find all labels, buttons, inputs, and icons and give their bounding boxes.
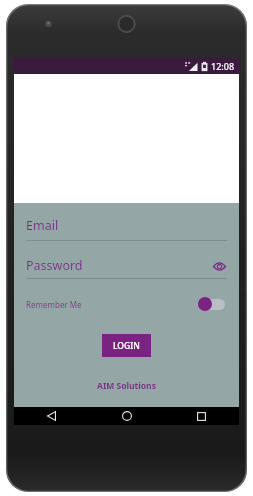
- staticText: Remember Me: [26, 299, 197, 310]
- button[interactable]: Remember Me: [26, 294, 227, 314]
- button[interactable]: AIM Solutions: [97, 380, 156, 392]
- staticText: 12:08: [211, 60, 235, 72]
- staticText: Email: [26, 217, 59, 234]
- staticText: Password: [26, 257, 211, 274]
- staticText: LOGIN: [113, 340, 140, 352]
- button[interactable]: Home: [89, 407, 164, 425]
- button[interactable]: Show password: [211, 258, 227, 274]
- button[interactable]: Recent apps: [164, 407, 239, 425]
- button[interactable]: LOGIN: [102, 334, 151, 357]
- button[interactable]: Password: [26, 257, 227, 279]
- button[interactable]: Email: [26, 217, 227, 241]
- button[interactable]: Back: [14, 407, 89, 425]
